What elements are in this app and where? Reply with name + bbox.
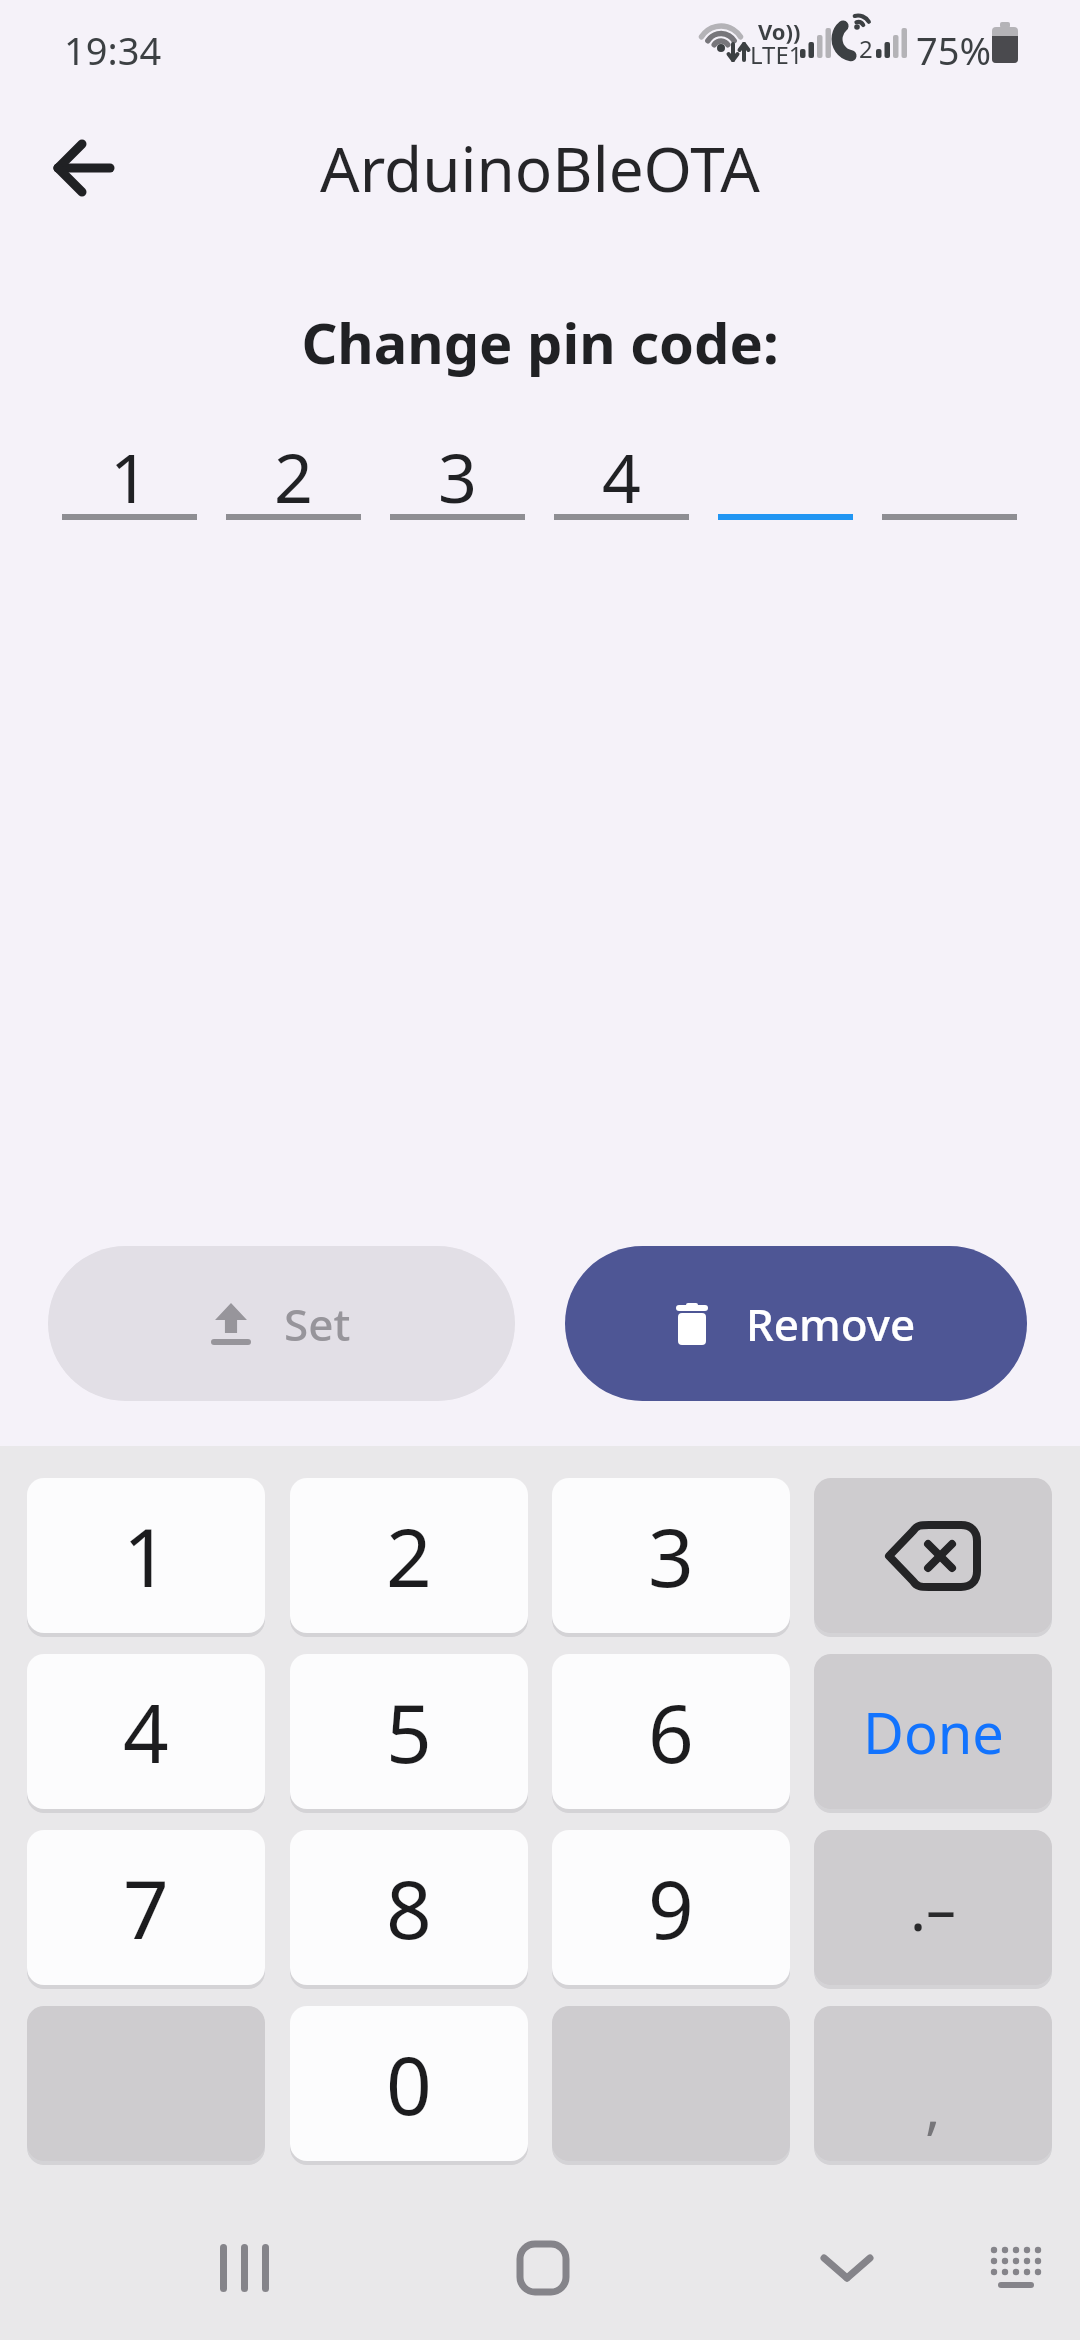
staticText: 1 <box>123 1501 169 1610</box>
staticText: 4 <box>602 430 641 510</box>
staticText: Set <box>284 1294 351 1354</box>
button[interactable]: 0 <box>290 2006 528 2161</box>
staticText: Vo)) <box>758 16 801 46</box>
staticText: 7 <box>123 1853 169 1962</box>
staticText: 5 <box>386 1677 432 1786</box>
staticText: 6 <box>648 1677 694 1786</box>
button[interactable]: Remove <box>565 1246 1027 1401</box>
button[interactable]: Done <box>814 1654 1052 1809</box>
button[interactable]: 9 <box>552 1830 790 1985</box>
button[interactable]: 4 <box>27 1654 265 1809</box>
staticText: 4 <box>123 1677 169 1786</box>
staticText: LTE1 <box>750 38 803 71</box>
button[interactable]: 8 <box>290 1830 528 1985</box>
staticText: 2 <box>859 32 873 65</box>
staticText: Done <box>863 1694 1004 1770</box>
staticText: , <box>925 2066 941 2145</box>
staticText: Remove <box>746 1294 916 1354</box>
button[interactable]: 7 <box>27 1830 265 1985</box>
staticText: 8 <box>386 1853 432 1962</box>
button[interactable] <box>36 120 132 216</box>
button[interactable] <box>814 1478 1052 1633</box>
staticText: 19:34 <box>64 24 162 76</box>
staticText: 75% <box>916 24 992 76</box>
staticText: ArduinoBleOTA <box>0 126 1080 210</box>
staticText: .– <box>910 1867 957 1949</box>
button[interactable]: Set <box>48 1246 515 1401</box>
staticText: 1 <box>110 430 149 510</box>
button[interactable]: 3 <box>552 1478 790 1633</box>
staticText: 2 <box>274 430 313 510</box>
staticText: 2 <box>386 1501 432 1610</box>
button[interactable]: 2 <box>290 1478 528 1633</box>
button[interactable]: .– <box>814 1830 1052 1985</box>
button[interactable]: 6 <box>552 1654 790 1809</box>
staticText: 0 <box>386 2029 432 2138</box>
staticText: 3 <box>648 1501 694 1610</box>
staticText: 3 <box>438 430 477 510</box>
button[interactable]: 1 <box>27 1478 265 1633</box>
staticText: 9 <box>648 1853 694 1962</box>
button[interactable]: 5 <box>290 1654 528 1809</box>
staticText: Change pin code: <box>0 304 1080 380</box>
button[interactable]: , <box>814 2006 1052 2161</box>
